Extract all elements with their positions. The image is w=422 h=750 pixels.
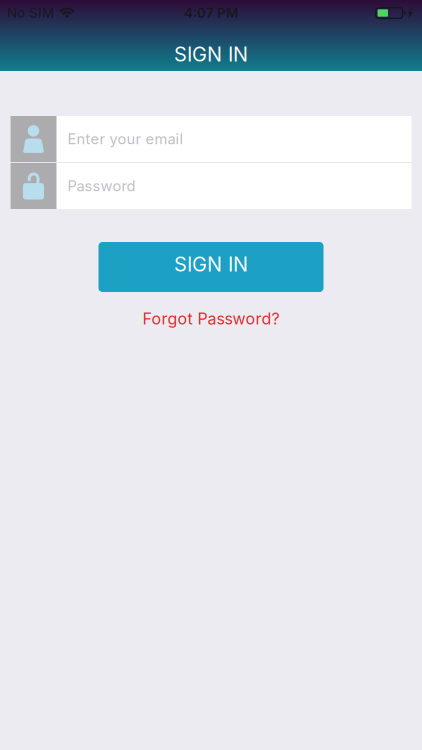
button[interactable]: Enter your email [10, 116, 411, 162]
button[interactable]: Password [10, 163, 411, 209]
staticText: 4:07 PM [184, 5, 238, 21]
staticText: Forgot Password? [142, 309, 279, 328]
staticText: Password [67, 177, 135, 195]
staticText: No SIM [7, 5, 54, 21]
staticText: Enter your email [67, 130, 183, 148]
button[interactable]: SIGN IN [98, 242, 323, 292]
staticText: SIGN IN [174, 42, 248, 66]
button[interactable]: Forgot Password? [142, 309, 279, 328]
staticText: SIGN IN [174, 252, 248, 276]
